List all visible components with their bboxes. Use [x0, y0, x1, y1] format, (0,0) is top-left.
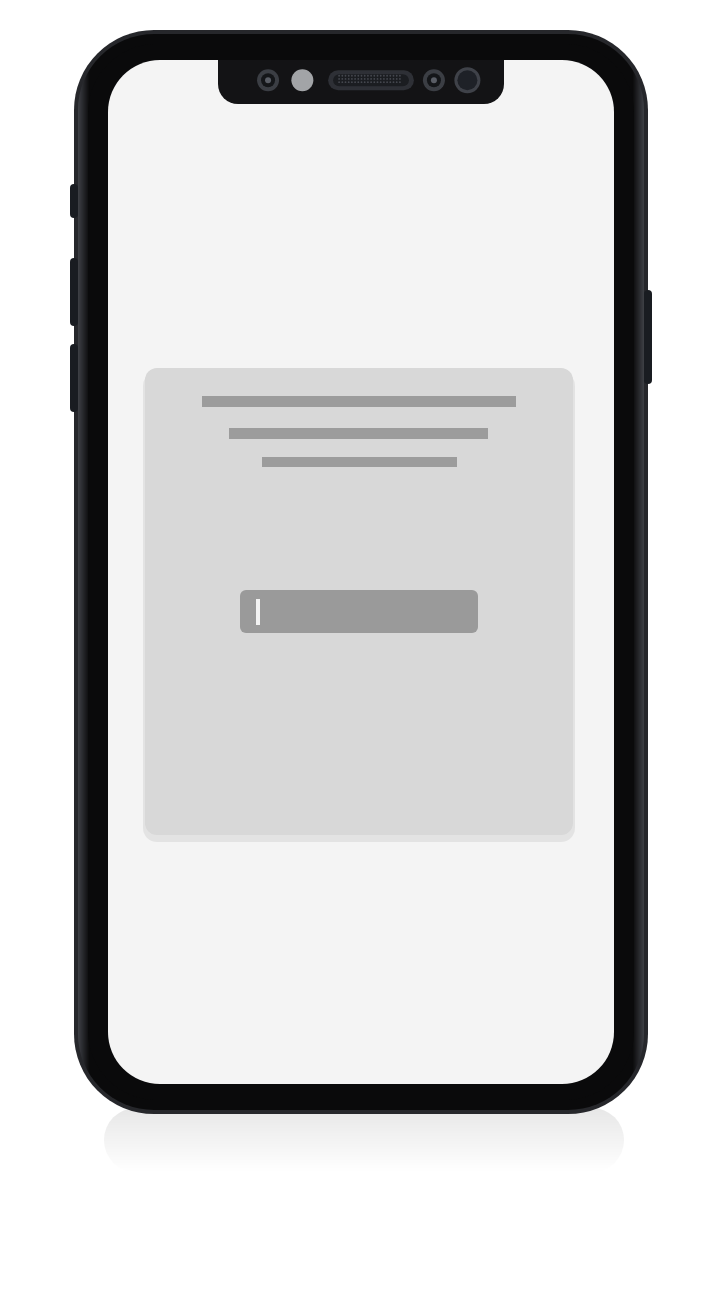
- button[interactable]: Text input field: [145, 368, 573, 835]
- button[interactable]: Text input field: [240, 590, 478, 633]
